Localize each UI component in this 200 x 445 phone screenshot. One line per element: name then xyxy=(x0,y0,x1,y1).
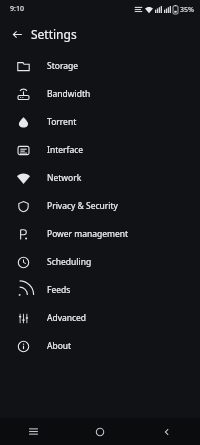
button[interactable]: Storage xyxy=(0,52,200,80)
button[interactable]: Feeds xyxy=(0,276,200,304)
staticText: Power management xyxy=(47,228,129,240)
staticText: Advanced xyxy=(47,312,87,324)
button[interactable]: Torrent xyxy=(0,108,200,136)
button[interactable]: Recent apps xyxy=(0,418,66,445)
staticText: Network xyxy=(47,172,82,184)
button[interactable]: Back xyxy=(7,24,27,44)
staticText: Interface xyxy=(47,144,84,156)
staticText: 9:10 xyxy=(10,4,24,14)
button[interactable]: Privacy & Security xyxy=(0,192,200,220)
button[interactable]: Advanced xyxy=(0,304,200,332)
staticText: Storage xyxy=(47,60,79,72)
staticText: Bandwidth xyxy=(47,88,91,100)
button[interactable]: Scheduling xyxy=(0,248,200,276)
button[interactable]: Power management xyxy=(0,220,200,248)
staticText: Privacy & Security xyxy=(47,200,118,212)
staticText: Torrent xyxy=(47,116,77,128)
staticText: Scheduling xyxy=(47,256,92,268)
staticText: 35% xyxy=(180,5,194,15)
staticText: About xyxy=(47,340,72,352)
button[interactable]: Network xyxy=(0,164,200,192)
button[interactable]: Bandwidth xyxy=(0,80,200,108)
button[interactable]: About xyxy=(0,332,200,360)
button[interactable]: Home xyxy=(66,418,133,445)
staticText: Feeds xyxy=(47,284,71,296)
staticText: Settings xyxy=(31,26,77,42)
button[interactable]: Back xyxy=(133,418,200,445)
button[interactable]: Interface xyxy=(0,136,200,164)
